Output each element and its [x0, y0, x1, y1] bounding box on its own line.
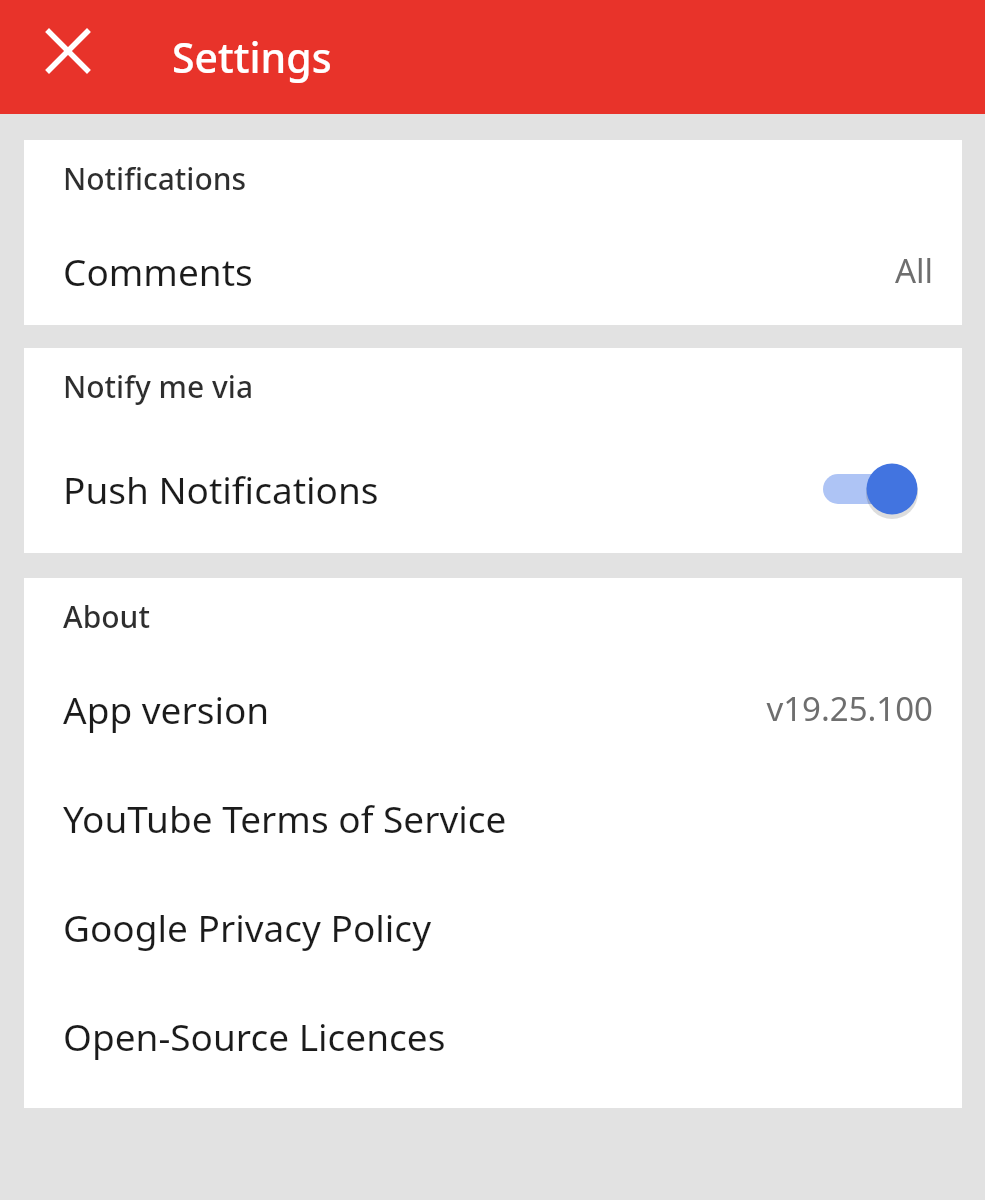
staticText: App version	[63, 684, 270, 734]
staticText: Google Privacy Policy	[63, 902, 432, 952]
button[interactable]: Close	[38, 21, 98, 81]
staticText: Notify me via	[63, 366, 254, 407]
staticText: Comments	[63, 246, 253, 296]
staticText: v19.25.100	[766, 686, 933, 731]
button[interactable]: Push Notifications	[24, 424, 962, 553]
button[interactable]: Google Privacy Policy	[24, 872, 962, 981]
button[interactable]: YouTube Terms of Service	[24, 763, 962, 872]
staticText: Push Notifications	[63, 464, 379, 514]
staticText: Notifications	[63, 158, 247, 199]
staticText: Settings	[172, 29, 332, 85]
staticText: About	[63, 596, 150, 637]
staticText: YouTube Terms of Service	[63, 793, 507, 843]
button[interactable]: Comments	[24, 216, 962, 325]
staticText: All	[894, 248, 933, 293]
staticText: Open-Source Licences	[63, 1011, 446, 1061]
button[interactable]: Push Notifications toggle	[820, 459, 920, 519]
button[interactable]: App version	[24, 654, 962, 763]
button[interactable]: Open-Source Licences	[24, 981, 962, 1090]
